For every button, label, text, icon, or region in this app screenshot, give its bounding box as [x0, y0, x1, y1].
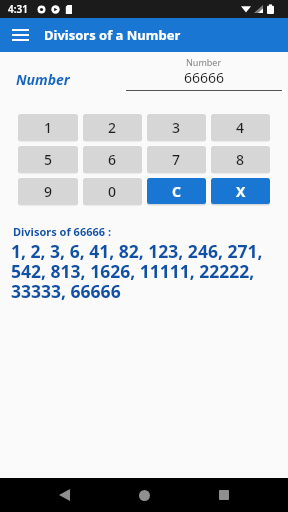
- staticText: 8: [236, 150, 245, 169]
- staticText: X: [236, 182, 246, 201]
- staticText: 0: [108, 182, 117, 201]
- button[interactable]: [52, 483, 76, 507]
- staticText: 1: [44, 118, 53, 137]
- button[interactable]: [212, 483, 236, 507]
- button[interactable]: 0: [83, 178, 142, 204]
- staticText: 4: [236, 118, 245, 137]
- button[interactable]: 7: [147, 146, 206, 172]
- staticText: 9: [44, 182, 53, 201]
- staticText: Divisors of a Number: [44, 26, 181, 44]
- button[interactable]: 4: [211, 114, 270, 140]
- staticText: 1, 2, 3, 6, 41, 82, 123, 246, 271, 542, …: [11, 239, 263, 303]
- staticText: 3: [172, 118, 181, 137]
- button[interactable]: C: [147, 178, 206, 204]
- staticText: 7: [172, 150, 181, 169]
- staticText: 6: [108, 150, 117, 169]
- staticText: Number: [16, 70, 70, 89]
- staticText: 4:31: [8, 2, 28, 16]
- button[interactable]: [132, 483, 156, 507]
- button[interactable]: 6: [83, 146, 142, 172]
- staticText: C: [172, 182, 181, 201]
- button[interactable]: 3: [147, 114, 206, 140]
- button[interactable]: [12, 29, 29, 41]
- button[interactable]: 1: [18, 114, 78, 140]
- button[interactable]: X: [211, 178, 270, 204]
- button[interactable]: 9: [18, 178, 78, 204]
- staticText: Number: [186, 56, 222, 68]
- button[interactable]: 66666: [184, 68, 225, 87]
- staticText: Divisors of 66666 :: [13, 224, 112, 239]
- staticText: 5: [44, 150, 53, 169]
- button[interactable]: 8: [211, 146, 270, 172]
- button[interactable]: 2: [83, 114, 142, 140]
- staticText: 2: [108, 118, 117, 137]
- button[interactable]: 5: [18, 146, 78, 172]
